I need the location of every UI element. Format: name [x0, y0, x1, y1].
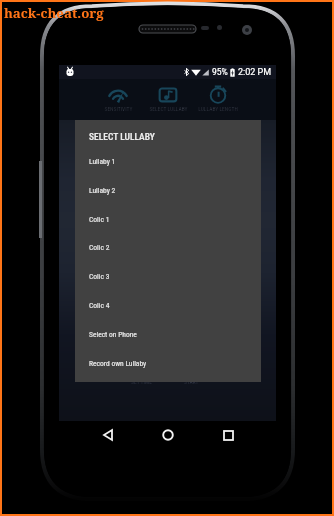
staticText: SELECT LULLABY: [149, 106, 188, 112]
button[interactable]: SELECT LULLABY: [143, 79, 193, 120]
staticText: Colic 3: [89, 272, 110, 281]
staticText: hack-cheat.org: [4, 4, 104, 22]
staticText: Colic 4: [89, 301, 110, 310]
staticText: Lullaby 1: [89, 157, 116, 166]
button[interactable]: LULLABY LENGTH: [193, 79, 243, 120]
button[interactable]: SENSITIVITY: [93, 79, 143, 120]
staticText: LULLABY LENGTH: [198, 106, 238, 112]
staticText: Lullaby 2: [89, 186, 116, 195]
button[interactable]: Colic 3: [75, 262, 261, 291]
button[interactable]: Select on Phone: [75, 320, 261, 349]
button[interactable]: Colic 1: [75, 205, 261, 234]
staticText: Record own Lullaby: [89, 359, 147, 368]
button[interactable]: Lullaby 1: [75, 147, 261, 176]
button[interactable]: Colic 4: [75, 291, 261, 320]
staticText: 2:02 PM: [238, 67, 272, 78]
staticText: Colic 2: [89, 243, 110, 252]
button[interactable]: Colic 2: [75, 233, 261, 262]
button[interactable]: Record own Lullaby: [75, 349, 261, 378]
staticText: SET TIME: [131, 379, 152, 385]
staticText: Select on Phone: [89, 330, 137, 339]
staticText: Colic 1: [89, 215, 110, 224]
staticText: 95%: [212, 67, 228, 77]
staticText: SENSITIVITY: [104, 106, 133, 112]
button[interactable]: Home: [138, 421, 198, 449]
staticText: SELECT LULLABY: [89, 131, 155, 142]
staticText: START: [184, 379, 199, 385]
button[interactable]: Lullaby 2: [75, 176, 261, 205]
button[interactable]: Back: [78, 421, 138, 449]
button[interactable]: Recent apps: [198, 421, 258, 449]
